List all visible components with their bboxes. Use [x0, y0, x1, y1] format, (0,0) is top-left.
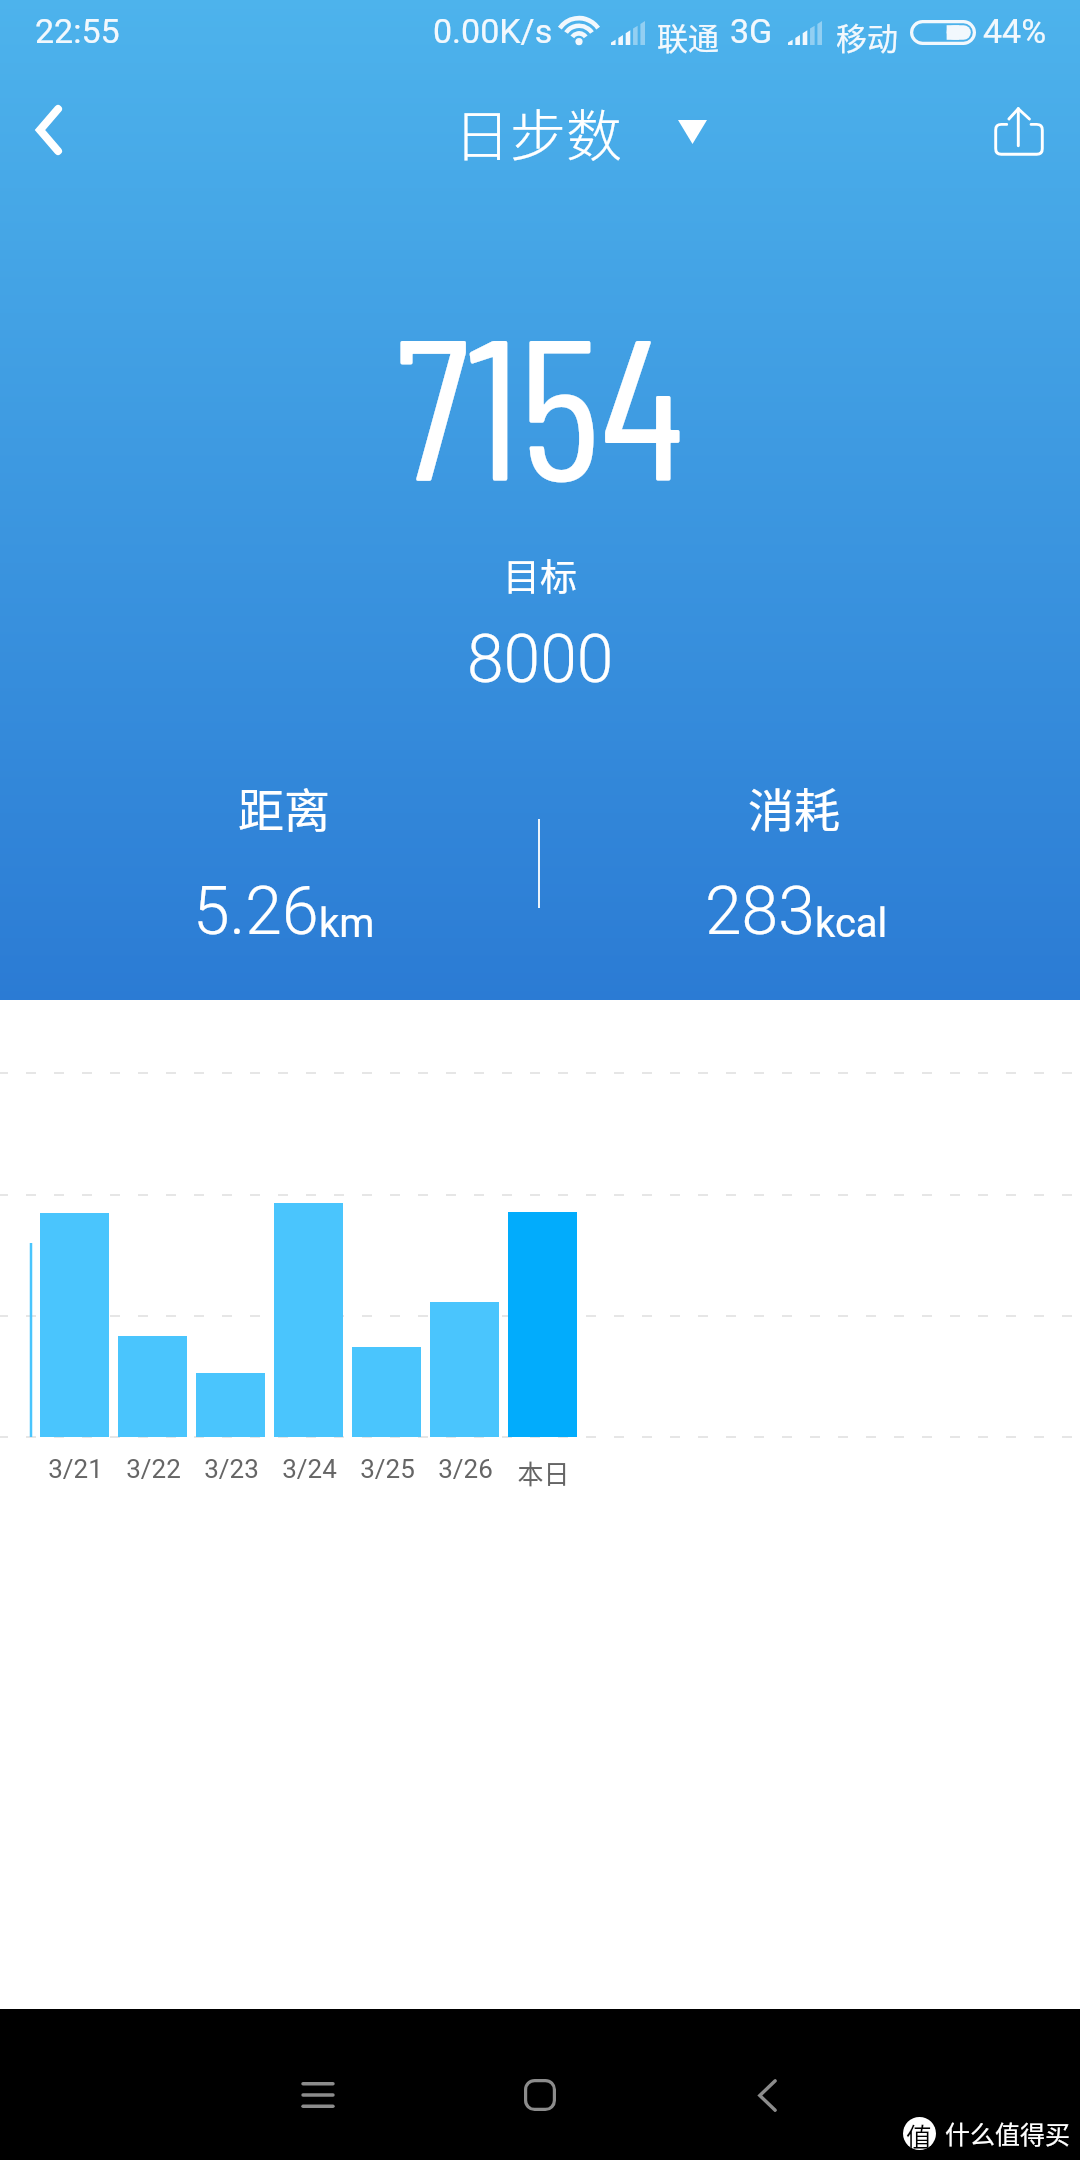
button[interactable]: Share [960, 70, 1080, 190]
staticText: 0.00K/s [433, 11, 553, 51]
staticText: 值 [906, 2117, 933, 2150]
button[interactable]: Home [470, 2047, 610, 2143]
staticText: 3/25 [360, 1454, 415, 1484]
staticText: 日步数 [454, 91, 622, 172]
staticText: 目标 [503, 548, 577, 602]
staticText: 3/26 [438, 1454, 493, 1484]
staticText: 5.26 [193, 873, 319, 950]
staticText: 本日 [517, 1454, 570, 1492]
button[interactable]: Recent apps [248, 2047, 388, 2143]
staticText: 3/22 [126, 1454, 181, 1484]
staticText: 3G [730, 11, 773, 51]
button[interactable]: Back [0, 70, 120, 190]
staticText: 3/23 [204, 1454, 259, 1484]
staticText: 距离 [238, 774, 330, 841]
staticText: 移动 [836, 14, 898, 59]
button[interactable]: 日步数 [454, 91, 707, 172]
staticText: 283 [705, 873, 815, 950]
staticText: 8000 [467, 621, 614, 698]
staticText: 什么值得买 [945, 2115, 1071, 2151]
staticText: 44% [983, 11, 1047, 51]
staticText: 7154 [396, 281, 684, 521]
staticText: km [319, 900, 375, 947]
staticText: 3/24 [282, 1454, 337, 1484]
staticText: 联通 [657, 14, 719, 59]
staticText: 消耗 [748, 774, 840, 841]
staticText: kcal [815, 900, 888, 947]
staticText: 3/21 [48, 1454, 103, 1484]
staticText: 22:55 [35, 11, 120, 51]
button[interactable]: Back [697, 2047, 837, 2143]
